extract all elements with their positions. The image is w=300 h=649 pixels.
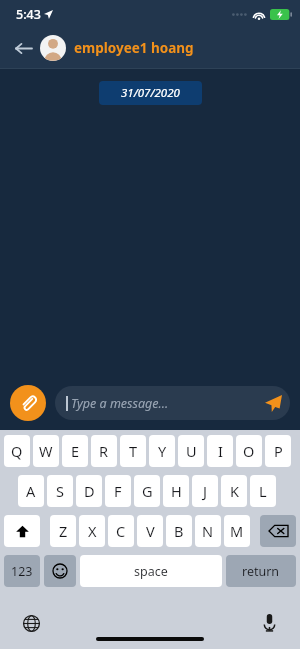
- staticText: S: [56, 481, 64, 501]
- button[interactable]: G: [134, 475, 160, 507]
- button[interactable]: B: [166, 515, 192, 547]
- staticText: 5:43: [16, 6, 41, 23]
- button[interactable]: space: [80, 555, 222, 587]
- button[interactable]: Shift: [4, 515, 40, 547]
- button[interactable]: T: [120, 435, 146, 467]
- staticText: A: [26, 481, 36, 501]
- button[interactable]: F: [105, 475, 131, 507]
- button[interactable]: Change keyboard: [18, 610, 44, 636]
- staticText: return: [242, 563, 280, 580]
- button[interactable]: N: [195, 515, 221, 547]
- button[interactable]: J: [192, 475, 218, 507]
- button[interactable]: Z: [50, 515, 76, 547]
- staticText: B: [174, 521, 184, 541]
- button[interactable]: L: [250, 475, 276, 507]
- staticText: G: [142, 481, 153, 501]
- staticText: M: [230, 521, 244, 541]
- staticText: F: [114, 481, 122, 501]
- button[interactable]: Y: [149, 435, 175, 467]
- staticText: E: [71, 441, 80, 461]
- staticText: R: [99, 441, 109, 461]
- button[interactable]: return: [226, 555, 296, 587]
- staticText: 31/07/2020: [121, 85, 180, 101]
- staticText: P: [274, 441, 283, 461]
- button[interactable]: Dictation: [256, 610, 282, 636]
- staticText: D: [84, 481, 95, 501]
- staticText: N: [202, 521, 214, 541]
- button[interactable]: Type a message...: [55, 386, 290, 420]
- button[interactable]: U: [178, 435, 204, 467]
- button[interactable]: Profile photo: [40, 35, 66, 61]
- button[interactable]: Emoji: [44, 555, 76, 587]
- staticText: Type a message...: [71, 395, 169, 412]
- button[interactable]: Send: [258, 388, 288, 418]
- staticText: I: [218, 441, 223, 461]
- button[interactable]: Q: [4, 435, 30, 467]
- staticText: J: [203, 481, 207, 501]
- staticText: V: [146, 521, 155, 541]
- staticText: H: [171, 481, 182, 501]
- button[interactable]: Back: [8, 33, 38, 63]
- button[interactable]: Attach file: [10, 385, 46, 421]
- button[interactable]: H: [163, 475, 189, 507]
- button[interactable]: E: [62, 435, 88, 467]
- button[interactable]: W: [33, 435, 59, 467]
- button[interactable]: D: [76, 475, 102, 507]
- button[interactable]: K: [221, 475, 247, 507]
- button[interactable]: 31/07/2020: [99, 81, 202, 105]
- button[interactable]: V: [137, 515, 163, 547]
- staticText: O: [243, 441, 255, 461]
- staticText: employee1 hoang: [74, 39, 194, 57]
- staticText: W: [39, 441, 53, 461]
- button[interactable]: Backspace: [260, 515, 296, 547]
- button[interactable]: R: [91, 435, 117, 467]
- staticText: 123: [11, 563, 33, 580]
- button[interactable]: I: [207, 435, 233, 467]
- button[interactable]: S: [47, 475, 73, 507]
- button[interactable]: P: [265, 435, 291, 467]
- button[interactable]: 123: [4, 555, 40, 587]
- staticText: C: [116, 521, 126, 541]
- button[interactable]: C: [108, 515, 134, 547]
- staticText: Y: [158, 441, 167, 461]
- button[interactable]: A: [18, 475, 44, 507]
- button[interactable]: X: [79, 515, 105, 547]
- staticText: X: [88, 521, 97, 541]
- staticText: Z: [59, 521, 68, 541]
- button[interactable]: M: [224, 515, 250, 547]
- staticText: Q: [11, 441, 23, 461]
- staticText: T: [129, 441, 138, 461]
- staticText: K: [230, 481, 239, 501]
- button[interactable]: O: [236, 435, 262, 467]
- staticText: space: [134, 563, 168, 580]
- staticText: U: [186, 441, 197, 461]
- staticText: L: [259, 481, 267, 501]
